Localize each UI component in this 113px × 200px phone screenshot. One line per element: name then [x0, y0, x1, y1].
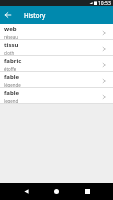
staticText: légende — [4, 82, 21, 88]
button[interactable]: Home — [42, 183, 70, 200]
button[interactable]: Recents — [73, 183, 101, 200]
staticText: fable — [4, 89, 20, 97]
button[interactable]: tissu — [0, 40, 113, 56]
button[interactable]: web — [0, 24, 113, 40]
staticText: étoffe — [4, 66, 17, 72]
staticText: fabric — [4, 57, 22, 65]
button[interactable]: fable — [0, 88, 113, 104]
staticText: 10:53 — [98, 0, 111, 6]
staticText: fable — [4, 73, 20, 81]
staticText: legend — [4, 98, 19, 104]
staticText: tissu — [4, 41, 19, 49]
button[interactable]: fable — [0, 72, 113, 88]
button[interactable]: Back — [12, 183, 40, 200]
staticText: web — [4, 25, 17, 33]
staticText: History — [24, 11, 46, 19]
staticText: réseau — [4, 34, 18, 40]
staticText: cloth — [4, 50, 15, 56]
button[interactable]: Back — [0, 6, 16, 24]
button[interactable]: fabric — [0, 56, 113, 72]
